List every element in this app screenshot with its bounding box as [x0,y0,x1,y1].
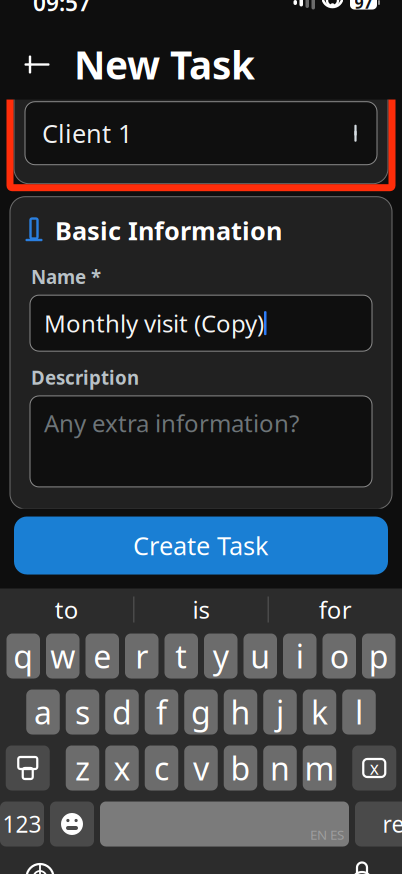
button[interactable]: z [66,745,99,790]
button[interactable]: Emoji [50,801,94,846]
button[interactable]: q [6,633,40,678]
staticText: m [304,747,334,789]
staticText: p [369,635,389,677]
staticText: 97 [354,0,372,13]
staticText: i [296,635,304,677]
staticText: return [382,809,402,839]
staticText: EN ES [310,826,344,843]
staticText: w [50,635,75,677]
staticText: v [193,747,209,789]
button[interactable]: e [85,633,119,678]
staticText: e [93,635,111,677]
staticText: d [112,691,132,733]
button[interactable]: y [204,633,237,678]
button[interactable]: 123 [0,801,44,846]
button[interactable]: k [303,689,336,734]
staticText: x [113,747,130,789]
button[interactable]: r [125,633,158,678]
staticText: o [330,635,349,677]
staticText: n [270,747,290,789]
button[interactable]: b [224,745,257,790]
staticText: b [230,747,250,789]
button[interactable]: return [355,801,402,846]
button[interactable]: u [243,633,277,678]
button[interactable]: t [164,633,198,678]
button[interactable]: is [134,586,268,632]
button[interactable]: to [0,586,133,632]
staticText: q [13,635,33,677]
button[interactable]: g [184,689,218,734]
button[interactable]: f [145,689,178,734]
staticText: Create Task [133,529,269,562]
button[interactable]: s [66,689,99,734]
button[interactable]: d [105,689,139,734]
staticText: t [175,635,187,677]
staticText: Any extra information? [44,407,299,439]
staticText: New Task [74,39,255,90]
button[interactable]: p [362,633,395,678]
staticText: j [276,691,284,733]
button[interactable]: v [184,745,218,790]
button[interactable]: j [263,689,297,734]
staticText: u [250,635,270,677]
button[interactable]: Shift [6,745,50,790]
staticText: 123 [2,809,41,839]
staticText: to [55,594,79,625]
button[interactable]: Space [100,801,349,846]
button[interactable]: for [269,586,402,632]
staticText: y [213,635,229,677]
staticText: Name * [31,264,101,289]
button[interactable]: Dictation [336,854,388,874]
button[interactable]: i [283,633,316,678]
button[interactable]: x [105,745,139,790]
button[interactable]: Switch keyboard [14,854,66,874]
button[interactable]: a [26,689,60,734]
staticText: x [370,756,379,779]
button[interactable]: Delete [352,745,396,790]
staticText: c [154,747,169,789]
staticText: a [34,691,52,733]
staticText: k [311,691,328,733]
staticText: s [75,691,90,733]
staticText: Description [31,365,139,390]
staticText: z [75,747,90,789]
button[interactable]: c [145,745,178,790]
staticText: for [319,594,352,625]
button[interactable]: Back [14,41,60,87]
button[interactable]: l [342,689,376,734]
button[interactable]: m [303,745,336,790]
staticText: g [191,691,211,733]
button[interactable]: h [224,689,257,734]
staticText: h [230,691,250,733]
button[interactable]: o [322,633,356,678]
button[interactable]: n [263,745,297,790]
staticText: Client 1 [42,116,132,150]
button[interactable]: Client 1 [25,102,377,165]
staticText: l [355,691,363,733]
button[interactable]: Create Task [14,516,388,574]
staticText: Monthly visit (Copy) [44,307,264,339]
staticText: f [156,691,167,733]
staticText: 09:57 [33,0,91,17]
button[interactable]: w [46,633,79,678]
staticText: Folder [60,51,140,85]
staticText: Basic Information [55,214,282,247]
staticText: r [135,635,148,677]
staticText: is [192,594,209,625]
